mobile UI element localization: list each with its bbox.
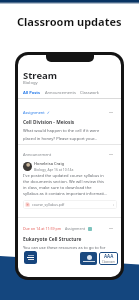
staticText: Cell Division - Meiosis <box>23 119 75 126</box>
button[interactable]: More options <box>106 225 115 232</box>
staticText: course_syllabus.pdf <box>32 202 65 207</box>
staticText: Due on 14 at 11:59 pm <box>23 226 62 231</box>
button[interactable]: More options <box>106 151 115 158</box>
staticText: Eukaryote Cell Structure <box>23 236 82 243</box>
button[interactable]: Classwork <box>80 90 99 95</box>
button[interactable]: More options <box>106 109 115 116</box>
staticText: Assignment ✓ <box>23 110 50 115</box>
staticText: Biology, Apr 16 at 10:14a <box>34 167 74 172</box>
staticText: Stream <box>23 69 58 82</box>
staticText: Assignment <box>65 226 86 231</box>
staticText: Honeleisa Craig <box>34 161 64 166</box>
staticText: Classroom updates <box>17 14 122 29</box>
button[interactable]: Badge <box>24 251 37 264</box>
staticText: All Posts <box>23 90 40 95</box>
staticText: AAA <box>104 253 114 259</box>
staticText: You can use these resources as to go to … <box>23 245 106 251</box>
button[interactable]: Announcements <box>45 90 76 95</box>
button[interactable]: All Posts <box>23 90 40 95</box>
staticText: I've posted the updated course syllabus … <box>23 173 108 197</box>
staticText: Classroom <box>102 260 115 264</box>
staticText: Biology <box>23 80 38 86</box>
button[interactable]: course_syllabus.pdf <box>23 200 117 209</box>
staticText: Classwork <box>80 90 99 95</box>
staticText: Announcements <box>45 90 76 95</box>
staticText: Announcement <box>23 152 52 157</box>
staticText: ‹ <box>113 202 115 207</box>
staticText: What would happen to the cell if it were… <box>23 128 100 141</box>
button[interactable]: Partner logo <box>80 252 97 265</box>
button[interactable]: Partner logo 2 <box>99 252 118 265</box>
